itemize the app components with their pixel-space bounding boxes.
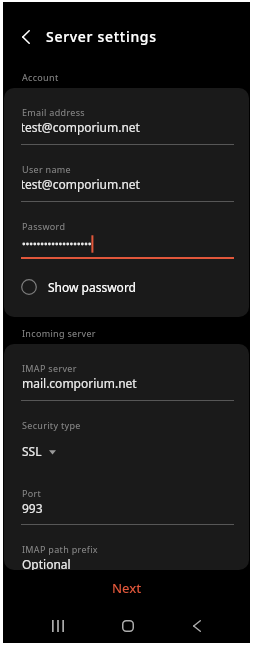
staticText: User name xyxy=(22,163,72,175)
staticText: Account xyxy=(22,71,59,83)
staticText: comporiumdigitaltest@comporium.net xyxy=(22,176,234,192)
staticText: SSL xyxy=(22,443,42,459)
staticText: IMAP path prefix xyxy=(22,543,98,555)
button[interactable]: Home xyxy=(111,609,145,643)
button[interactable]: Back xyxy=(180,609,214,643)
button[interactable]: Next xyxy=(3,570,250,600)
staticText: Port xyxy=(22,487,42,499)
staticText: Server settings xyxy=(46,27,157,46)
staticText: Password xyxy=(22,220,66,232)
staticText: comporiumdigitaltest@comporium.net xyxy=(22,119,234,135)
staticText: Show password xyxy=(48,279,136,295)
staticText: Incoming server xyxy=(22,327,96,339)
staticText: Security type xyxy=(22,419,81,431)
staticText: 993 xyxy=(22,500,43,516)
staticText: Optional xyxy=(22,556,71,570)
button[interactable]: Navigate up xyxy=(9,20,43,54)
staticText: Email address xyxy=(22,106,85,118)
staticText: IMAP server xyxy=(22,362,77,374)
staticText: Next xyxy=(112,579,142,597)
button[interactable]: Show password xyxy=(4,259,249,317)
button[interactable]: Recent apps xyxy=(41,609,75,643)
staticText: mail.comporium.net xyxy=(22,375,137,391)
